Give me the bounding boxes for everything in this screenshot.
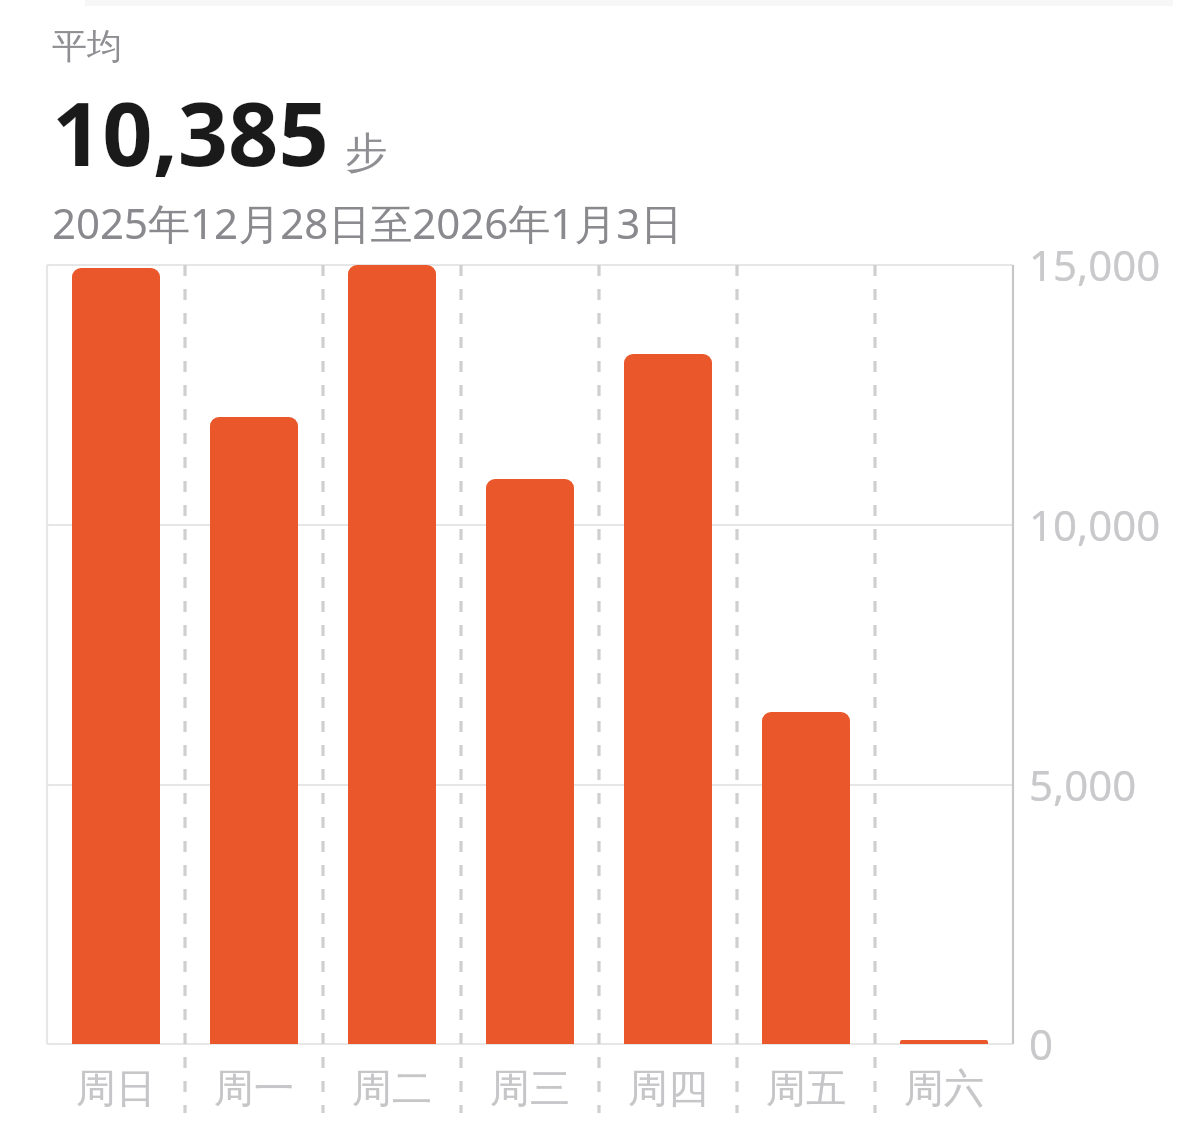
staticText: 周日 <box>47 1063 185 1113</box>
staticText: 周六 <box>875 1063 1013 1113</box>
staticText: 平均 <box>52 24 122 68</box>
staticText: 周四 <box>599 1063 737 1113</box>
staticText: 10,385 <box>52 72 329 192</box>
staticText: 周五 <box>737 1063 875 1113</box>
button[interactable]: 周日 <box>47 1063 185 1113</box>
button[interactable]: 平均 <box>0 0 1179 245</box>
staticText: 周三 <box>461 1063 599 1113</box>
staticText: 2025年12月28日至2026年1月3日 <box>52 194 683 251</box>
button[interactable]: 周二 <box>323 1063 461 1113</box>
staticText: 步 <box>345 127 387 180</box>
button[interactable]: 周六 <box>875 1063 1013 1113</box>
staticText: 15,000 <box>1029 236 1161 293</box>
button[interactable]: 周四 <box>599 1063 737 1113</box>
staticText: 周二 <box>323 1063 461 1113</box>
button[interactable]: 周一 <box>185 1063 323 1113</box>
staticText: 0 <box>1029 1015 1054 1072</box>
staticText: 周一 <box>185 1063 323 1113</box>
staticText: 10,000 <box>1029 496 1161 553</box>
button[interactable]: 周五 <box>737 1063 875 1113</box>
button[interactable]: 周三 <box>461 1063 599 1113</box>
staticText: 5,000 <box>1029 756 1137 813</box>
button[interactable]: 每周步数柱状图 <box>0 245 1179 1142</box>
